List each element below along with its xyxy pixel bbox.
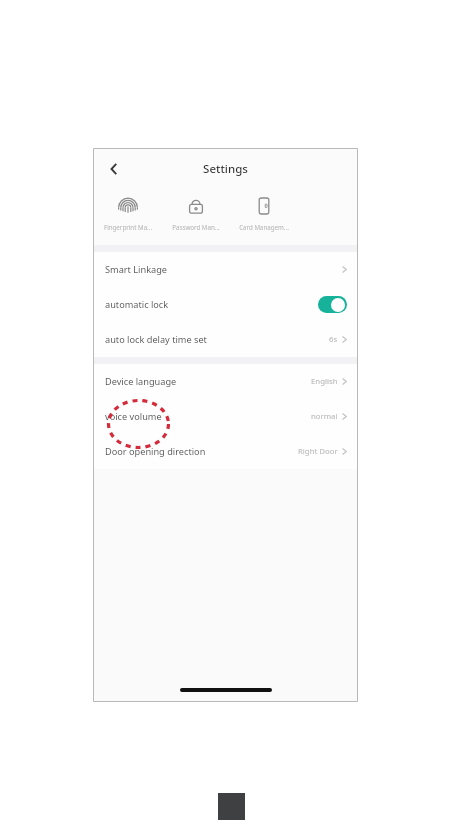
button[interactable]: Device language xyxy=(94,364,357,399)
staticText: Right Door xyxy=(298,446,338,457)
staticText: normal xyxy=(311,411,338,422)
staticText: automatic lock xyxy=(105,298,169,311)
other: Automatic lock toggle xyxy=(318,296,347,313)
staticText: auto lock delay time set xyxy=(105,333,207,346)
button[interactable]: automatic lock xyxy=(94,287,357,322)
button[interactable]: Back xyxy=(99,154,129,184)
button[interactable]: Smart Linkage xyxy=(94,252,357,287)
button[interactable]: Fingerprint Ma... xyxy=(94,188,162,231)
staticText: Door opening direction xyxy=(105,445,206,458)
staticText: Settings xyxy=(203,161,248,177)
staticText: Password Man... xyxy=(162,223,230,231)
staticText: 6s xyxy=(329,334,338,345)
button[interactable]: auto lock delay time set xyxy=(94,322,357,357)
staticText: voice volume xyxy=(105,410,162,423)
staticText: Card Managem... xyxy=(230,223,298,231)
button[interactable]: Door opening direction xyxy=(94,434,357,469)
button[interactable]: voice volume xyxy=(94,399,357,434)
staticText: Device language xyxy=(105,375,177,388)
button[interactable]: Card Managem... xyxy=(230,188,298,231)
button[interactable]: Password Man... xyxy=(162,188,230,231)
staticText: English xyxy=(311,376,338,387)
staticText: Smart Linkage xyxy=(105,263,168,276)
staticText: Fingerprint Ma... xyxy=(94,223,162,231)
